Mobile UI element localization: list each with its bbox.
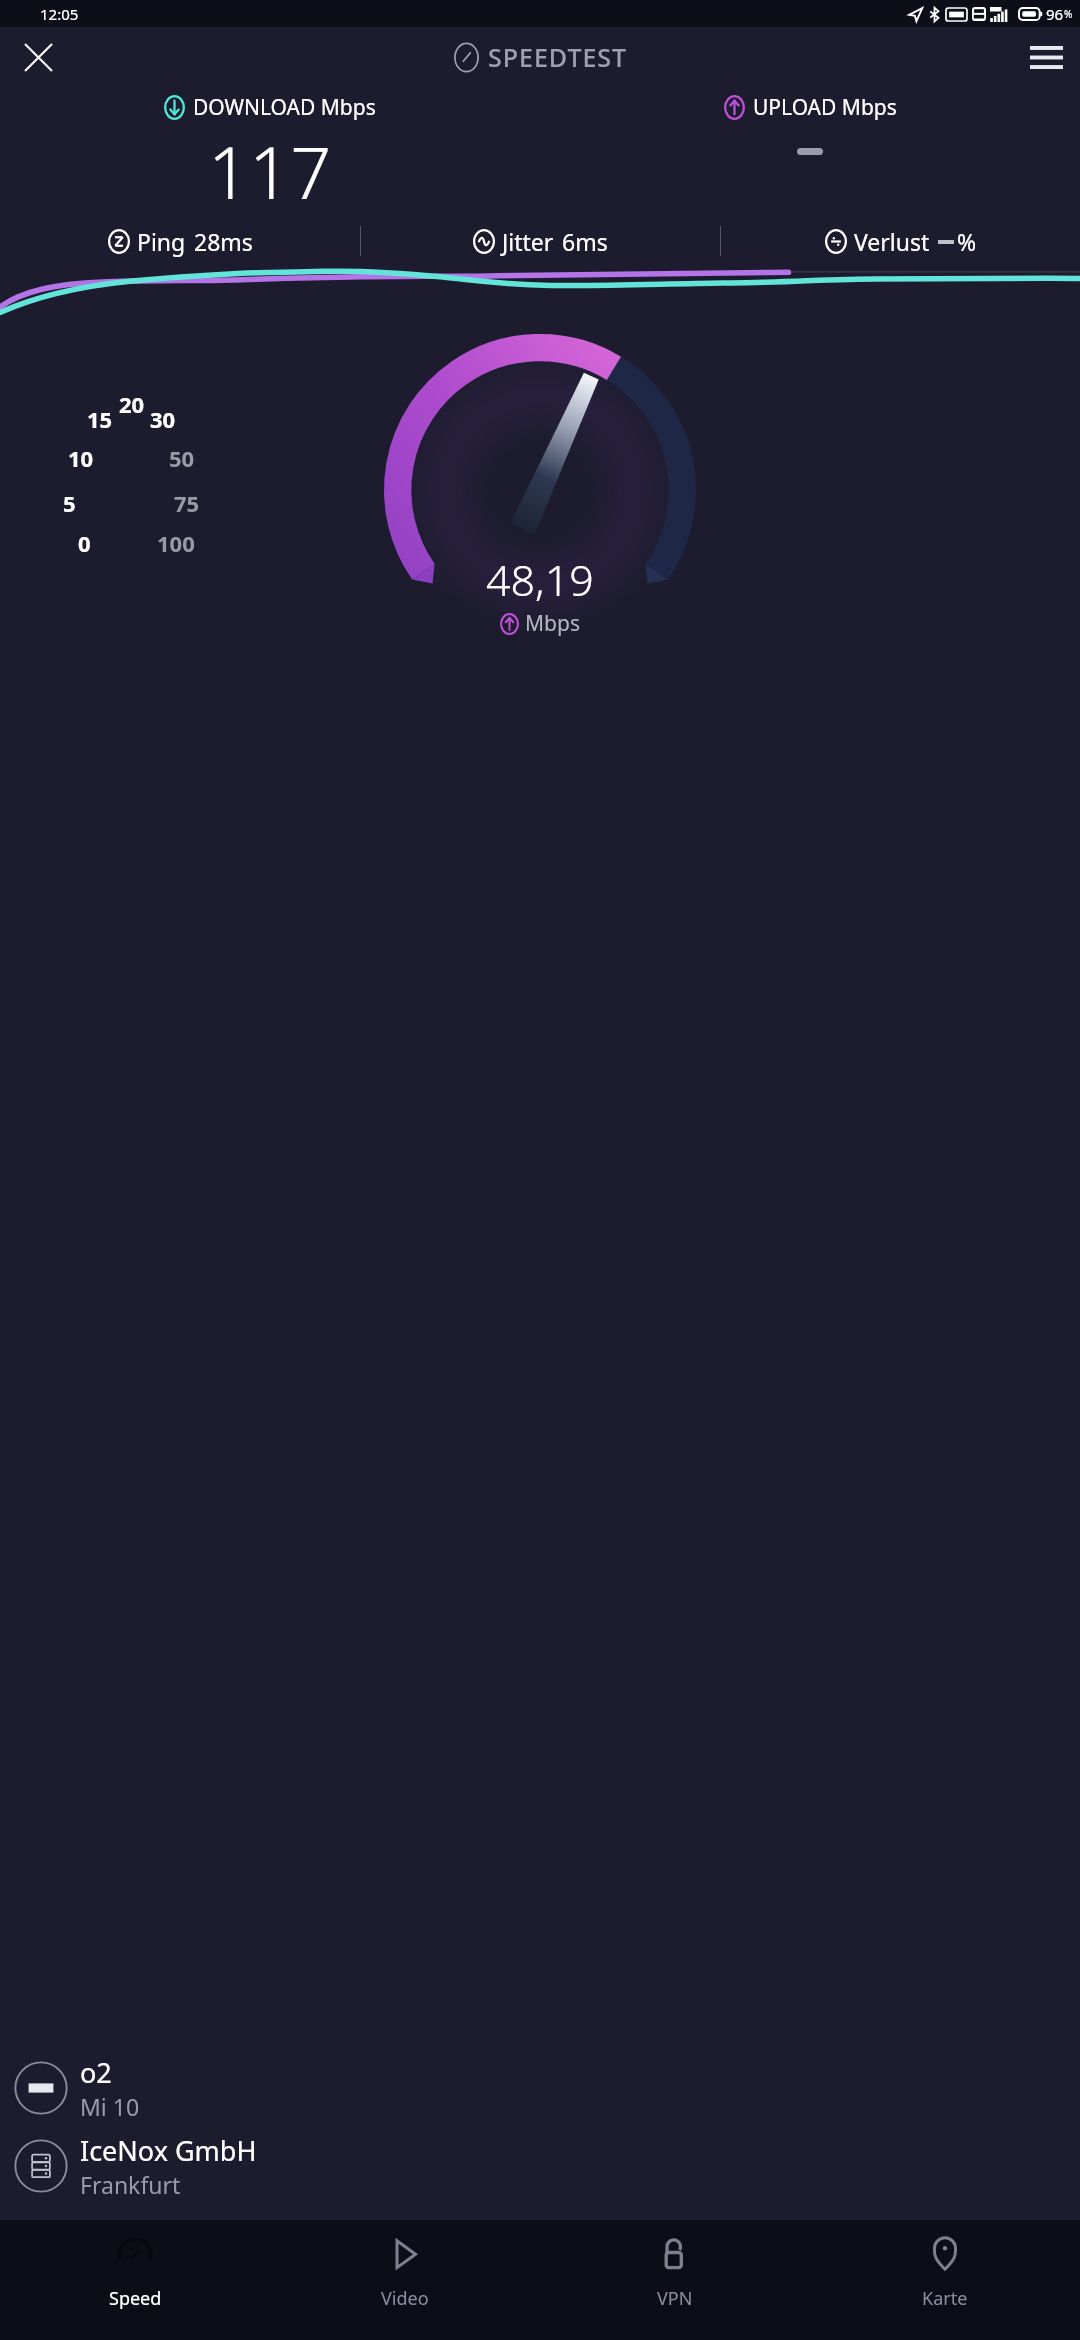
staticText: 117 [208, 122, 332, 220]
staticText: Jitter [502, 226, 554, 257]
staticText: 96 [1046, 4, 1064, 24]
staticText: 15 [87, 404, 113, 434]
staticText: 5 [63, 488, 76, 518]
staticText: VPN [657, 2286, 693, 2311]
button[interactable]: SPEEDTEST [452, 40, 628, 74]
staticText: Karte [922, 2286, 968, 2311]
button[interactable]: Jitter [361, 226, 720, 257]
staticText: 12:05 [40, 4, 79, 24]
staticText: 75 [174, 488, 200, 518]
button[interactable]: Verlust [721, 226, 1080, 257]
staticText: % [1064, 7, 1073, 21]
button[interactable]: IceNox GmbH [0, 2132, 1080, 2200]
staticText: 50 [169, 443, 195, 473]
staticText: 0 [78, 528, 91, 558]
staticText: Video [381, 2286, 429, 2311]
staticText: IceNox GmbH [80, 2132, 257, 2169]
staticText: 20 [119, 389, 145, 419]
button[interactable]: Menu [1020, 31, 1072, 83]
staticText: 28ms [194, 226, 253, 257]
staticText: Mi 10 [80, 2091, 140, 2122]
button[interactable]: o2 [0, 2054, 1080, 2122]
staticText: 100 [157, 528, 195, 558]
staticText: SPEEDTEST [488, 40, 628, 74]
staticText: Ping [137, 226, 186, 257]
staticText: 6ms [562, 226, 608, 257]
staticText: UPLOAD Mbps [753, 93, 897, 122]
button[interactable]: Video [270, 2220, 540, 2340]
staticText: Frankfurt [80, 2169, 181, 2200]
button[interactable]: Speed [0, 2220, 270, 2340]
staticText: 48,19 [486, 550, 594, 609]
staticText: 30 [150, 404, 176, 434]
staticText: Verlust [854, 226, 930, 257]
staticText: 10 [68, 443, 94, 473]
button[interactable]: Close [12, 31, 64, 83]
button[interactable]: VPN [540, 2220, 810, 2340]
staticText: Speed [109, 2286, 162, 2311]
button[interactable]: Karte [810, 2220, 1080, 2340]
button[interactable]: Ping [0, 226, 360, 257]
staticText: o2 [80, 2054, 112, 2091]
staticText: DOWNLOAD Mbps [193, 93, 376, 122]
staticText: % [957, 226, 977, 257]
staticText: Mbps [525, 609, 580, 638]
